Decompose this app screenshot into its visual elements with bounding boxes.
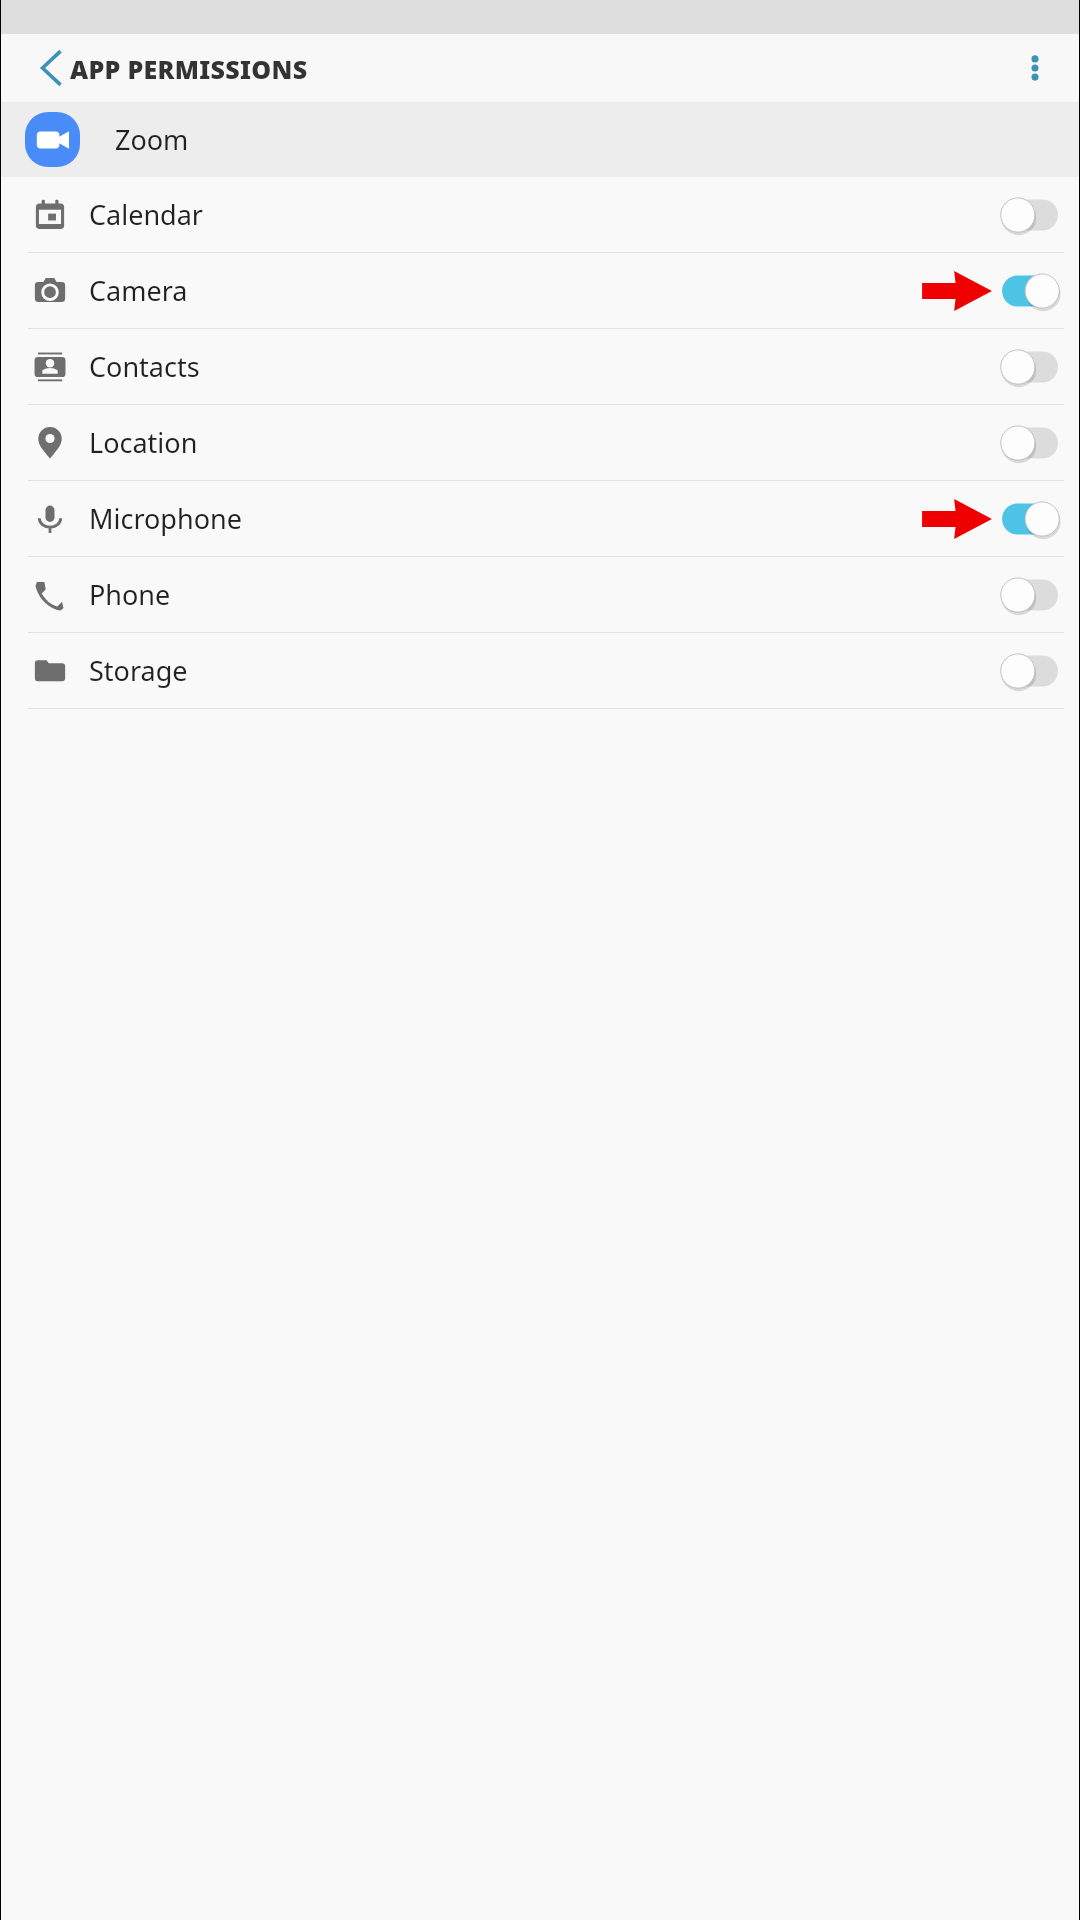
button[interactable]: Back (23, 40, 79, 96)
button[interactable]: Camera permission toggle (999, 269, 1061, 313)
button[interactable]: Calendar (1, 177, 1079, 252)
button[interactable]: Location (1, 405, 1079, 480)
button[interactable]: Phone (1, 557, 1079, 632)
staticText: Location (89, 424, 198, 461)
button[interactable]: Camera (1, 253, 1079, 328)
button[interactable]: Phone permission toggle (999, 573, 1061, 617)
button[interactable]: More options (1009, 42, 1061, 94)
staticText: Zoom (115, 121, 189, 158)
button[interactable]: Location permission toggle (999, 421, 1061, 465)
button[interactable]: Microphone (1, 481, 1079, 556)
button[interactable]: Calendar permission toggle (999, 193, 1061, 237)
button[interactable]: Storage permission toggle (999, 649, 1061, 693)
button[interactable]: Contacts (1, 329, 1079, 404)
staticText: Calendar (89, 196, 203, 233)
staticText: Camera (89, 272, 188, 309)
staticText: Contacts (89, 348, 200, 385)
button[interactable]: Contacts permission toggle (999, 345, 1061, 389)
staticText: APP PERMISSIONS (70, 52, 308, 86)
staticText: Microphone (89, 500, 242, 537)
button[interactable]: Storage (1, 633, 1079, 708)
button[interactable]: Zoom (1, 102, 1079, 177)
button[interactable]: Microphone permission toggle (999, 497, 1061, 541)
staticText: Phone (89, 576, 171, 613)
staticText: Storage (89, 652, 188, 689)
